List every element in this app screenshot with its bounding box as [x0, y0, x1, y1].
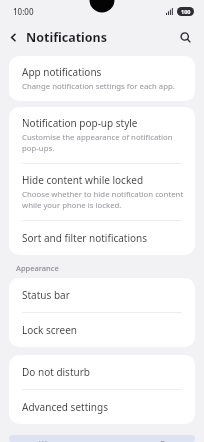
button[interactable]: Advanced settings: [9, 390, 195, 424]
staticText: Notifications: [26, 29, 108, 46]
staticText: Choose whether to hide notification cont…: [22, 189, 184, 211]
staticText: Advanced settings: [22, 400, 108, 414]
staticText: Lock screen: [22, 323, 78, 337]
staticText: 10:00: [13, 6, 34, 17]
staticText: Notification pop-up style: [22, 116, 138, 130]
button[interactable]: Sort and filter notifications: [9, 221, 195, 255]
staticText: Do not disturb: [22, 365, 90, 379]
staticText: Status bar: [22, 288, 70, 302]
button[interactable]: Lock screen: [9, 313, 195, 347]
button[interactable]: Notification pop-up style: [9, 107, 195, 163]
button[interactable]: Search: [174, 26, 196, 48]
staticText: Appearance: [16, 263, 59, 273]
staticText: Change notification settings for each ap…: [22, 81, 175, 92]
staticText: 100: [181, 8, 191, 15]
button[interactable]: Back: [0, 24, 26, 50]
button[interactable]: Status bar: [9, 278, 195, 312]
button[interactable]: Looking for something else?: [9, 435, 195, 442]
button[interactable]: Do not disturb: [9, 355, 195, 389]
staticText: App notifications: [22, 65, 102, 79]
staticText: Sort and filter notifications: [22, 231, 148, 245]
button[interactable]: App notifications: [9, 56, 195, 101]
staticText: Hide content while locked: [22, 173, 144, 187]
button[interactable]: Hide content while locked: [9, 164, 195, 220]
staticText: Customise the appearance of notification…: [22, 132, 184, 154]
